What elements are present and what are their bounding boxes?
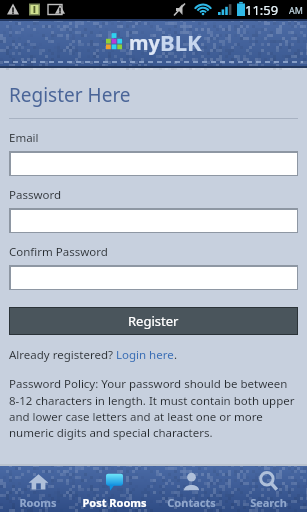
- staticText: Rooms: [19, 495, 57, 510]
- staticText: Confirm Password: [9, 244, 108, 260]
- staticText: Login here: [116, 347, 174, 363]
- button[interactable]: Search: [230, 464, 307, 512]
- staticText: Email: [9, 130, 39, 146]
- staticText: Contacts: [167, 495, 216, 510]
- staticText: Password Policy: Your password should be…: [9, 376, 298, 440]
- button[interactable]: Contacts: [153, 464, 230, 512]
- staticText: Register Here: [9, 82, 131, 108]
- staticText: AM: [289, 4, 303, 16]
- staticText: .: [174, 347, 178, 363]
- button[interactable]: Rooms: [0, 464, 76, 512]
- staticText: Password: [9, 187, 62, 203]
- staticText: Already registered?: [9, 347, 116, 363]
- staticText: BLK: [160, 27, 202, 57]
- button[interactable]: Login here: [116, 347, 174, 363]
- staticText: my: [129, 29, 160, 56]
- staticText: 11:59: [245, 1, 279, 19]
- staticText: Search: [250, 495, 287, 510]
- button[interactable]: Post Rooms: [76, 464, 153, 512]
- button[interactable]: Register: [10, 308, 297, 334]
- staticText: Post Rooms: [82, 495, 147, 510]
- staticText: Register: [128, 312, 179, 330]
